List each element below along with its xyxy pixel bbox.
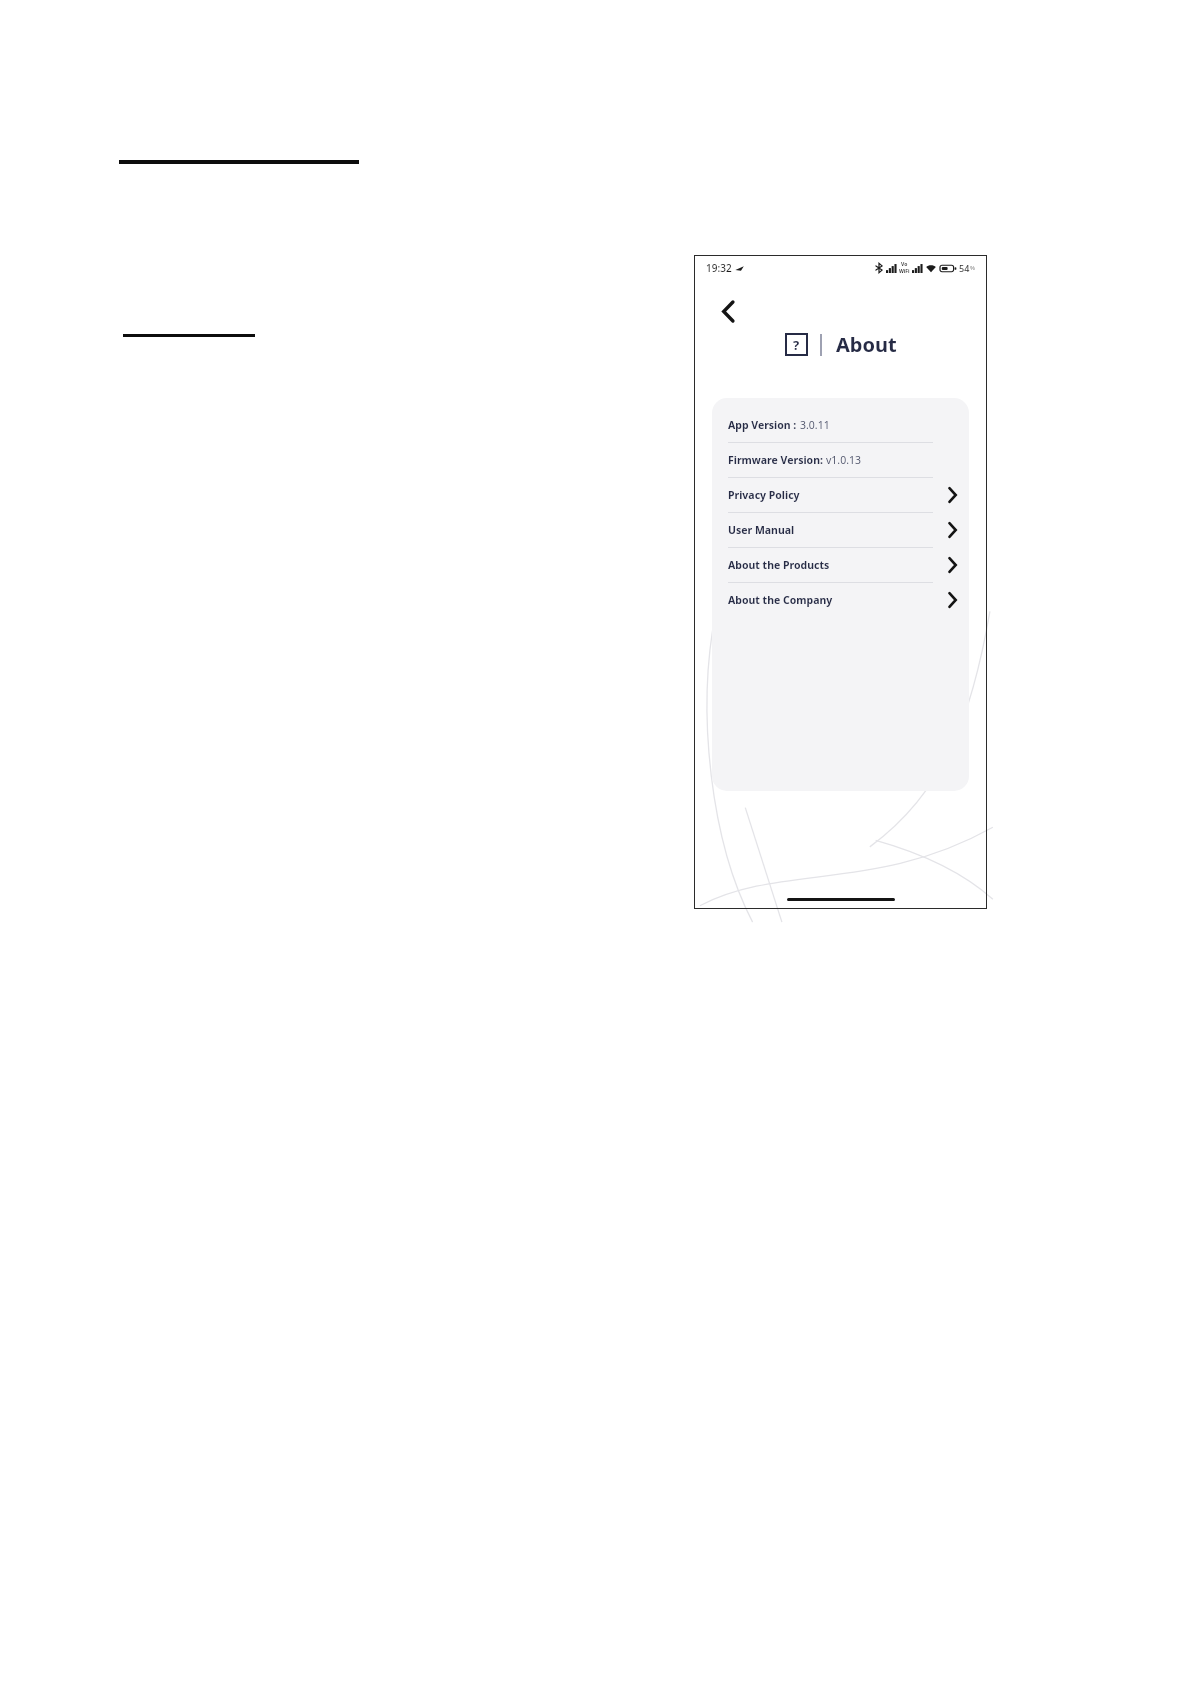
staticText: Vo	[901, 261, 908, 268]
button[interactable]: User Manual	[728, 513, 959, 547]
button[interactable]: About the Company	[728, 583, 959, 617]
button[interactable]: About the Products	[728, 548, 959, 582]
staticText: About the Company	[728, 593, 833, 607]
staticText: 19:32	[706, 261, 732, 275]
staticText: ?	[793, 336, 800, 354]
staticText: User Manual	[728, 523, 795, 537]
staticText: 54	[959, 262, 970, 274]
staticText: 3.0.11	[800, 418, 830, 432]
staticText: %	[970, 264, 975, 272]
staticText: About the Products	[728, 558, 830, 572]
staticText: WiFi	[899, 268, 910, 275]
staticText: v1.0.13	[826, 453, 861, 467]
button[interactable]: Privacy Policy	[728, 478, 959, 512]
staticText: About	[836, 331, 897, 358]
staticText: Firmware Version:	[728, 453, 826, 467]
staticText: App Version :	[728, 418, 800, 432]
button[interactable]: Back	[712, 295, 744, 327]
staticText: Privacy Policy	[728, 488, 800, 502]
